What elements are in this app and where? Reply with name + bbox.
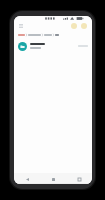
button[interactable]: Menu: [17, 22, 25, 30]
button[interactable]: Path segment: [18, 32, 25, 38]
button[interactable]: [14, 39, 92, 53]
button[interactable]: Search: [71, 23, 77, 29]
button[interactable]: Path segment: [44, 32, 52, 38]
button[interactable]: Back: [22, 174, 32, 184]
button[interactable]: Recent apps: [74, 174, 84, 184]
button[interactable]: More options: [81, 23, 87, 29]
button[interactable]: Path segment: [55, 32, 59, 38]
button[interactable]: Path segment: [28, 32, 41, 38]
button[interactable]: Home: [48, 174, 58, 184]
